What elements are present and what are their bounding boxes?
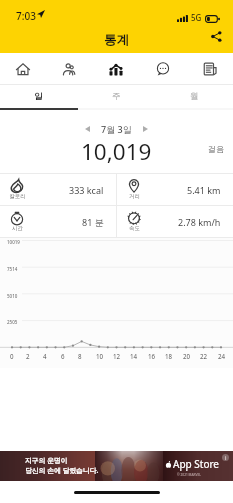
button[interactable]: Statistics: [92, 53, 139, 84]
staticText: 통계: [104, 32, 129, 48]
staticText: 칼로리: [9, 193, 26, 200]
button[interactable]: Next day: [138, 121, 153, 137]
staticText: 거리: [129, 193, 140, 200]
staticText: 2.78 km/h: [178, 216, 221, 228]
staticText: 81 분: [82, 216, 104, 228]
staticText: 걸음: [208, 144, 224, 154]
button[interactable]: Advertisement: [0, 451, 233, 481]
staticText: 10: [96, 352, 104, 360]
staticText: 5.41 km: [187, 184, 221, 196]
staticText: 10019: [7, 239, 20, 245]
staticText: 5G: [191, 12, 202, 23]
button[interactable]: Home: [0, 53, 46, 84]
staticText: 2: [26, 352, 30, 360]
button[interactable]: Feed: [186, 53, 233, 84]
staticText: 10,019: [81, 136, 152, 167]
button[interactable]: 월: [155, 85, 233, 108]
staticText: 월: [190, 91, 199, 102]
button[interactable]: 칼로리: [0, 174, 116, 205]
staticText: 8: [78, 352, 82, 360]
staticText: 7514: [7, 266, 18, 272]
staticText: 24: [218, 352, 226, 360]
button[interactable]: Chat: [139, 53, 186, 84]
staticText: 일: [34, 91, 43, 102]
staticText: 주: [112, 91, 121, 102]
staticText: 6: [61, 352, 65, 360]
staticText: 시간: [12, 225, 23, 232]
button[interactable]: Friends: [46, 53, 92, 84]
button[interactable]: 시간: [0, 206, 116, 237]
staticText: 333 kcal: [69, 184, 104, 196]
button[interactable]: 거리: [117, 174, 233, 205]
button[interactable]: 일: [0, 85, 77, 108]
staticText: 0: [10, 352, 14, 360]
button[interactable]: Previous day: [80, 121, 95, 137]
staticText: © 2021 MARVEL: [177, 473, 201, 477]
staticText: 14: [130, 352, 138, 360]
staticText: 5010: [7, 293, 18, 299]
staticText: 7월 3일: [101, 123, 132, 135]
button[interactable]: 속도: [117, 206, 233, 237]
button[interactable]: Share: [208, 28, 225, 45]
staticText: 16: [148, 352, 156, 360]
staticText: 7:03: [16, 9, 36, 23]
staticText: 지구의 운명이 당신의 손에 달렸습니다.: [25, 456, 99, 475]
staticText: 2505: [7, 319, 18, 325]
staticText: 20: [183, 352, 191, 360]
staticText: 4: [43, 352, 47, 360]
staticText: 18: [165, 352, 173, 360]
staticText: App Store: [173, 457, 220, 471]
staticText: i: [225, 455, 227, 461]
staticText: 22: [200, 352, 208, 360]
staticText: 속도: [129, 225, 140, 232]
button[interactable]: 주: [77, 85, 155, 108]
staticText: 12: [113, 352, 121, 360]
